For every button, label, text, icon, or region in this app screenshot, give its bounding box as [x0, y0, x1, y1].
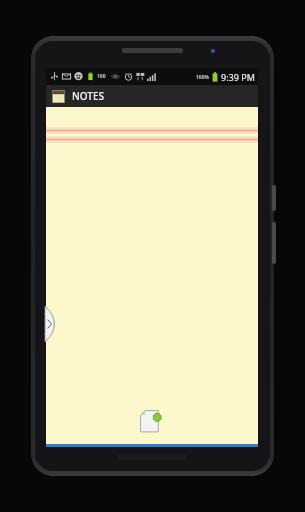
staticText: 100%: [196, 74, 210, 81]
staticText: 100: [97, 73, 106, 80]
staticText: NOTES: [72, 89, 104, 103]
button[interactable]: Open notes drawer: [45, 306, 58, 342]
staticText: 9:39 PM: [221, 71, 255, 83]
button[interactable]: New note: [137, 406, 167, 436]
button[interactable]: NOTES: [46, 85, 258, 107]
